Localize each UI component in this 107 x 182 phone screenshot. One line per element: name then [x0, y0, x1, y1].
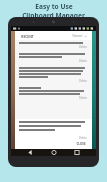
staticText: Clipboard Manager — [22, 11, 85, 20]
button[interactable]: Delete — [15, 85, 92, 102]
button[interactable]: RECENT — [19, 33, 36, 39]
staticText: Delete — [79, 136, 87, 140]
button[interactable]: Newest — [70, 33, 89, 39]
button[interactable]: Delete — [15, 51, 92, 65]
staticText: Easy to Use — [35, 2, 73, 11]
staticText: Delete — [79, 79, 87, 83]
button[interactable]: Home — [49, 149, 59, 156]
staticText: RECENT — [21, 34, 34, 38]
staticText: Delete — [79, 45, 87, 49]
button[interactable]: Delete — [78, 59, 88, 63]
button[interactable]: Delete — [15, 40, 92, 51]
staticText: Delete — [79, 59, 87, 63]
button[interactable]: CLOSE — [74, 141, 88, 147]
staticText: Delete — [79, 96, 87, 100]
button[interactable]: Delete — [78, 96, 88, 100]
button[interactable]: Delete — [15, 65, 92, 85]
button[interactable]: Recent apps — [72, 149, 82, 156]
staticText: CLOSE — [76, 142, 86, 146]
button[interactable]: Delete — [78, 45, 88, 49]
button[interactable]: Delete — [78, 136, 88, 140]
button[interactable]: Delete — [78, 79, 88, 83]
button[interactable]: Back — [25, 149, 35, 156]
staticText: Newest — [72, 34, 83, 38]
